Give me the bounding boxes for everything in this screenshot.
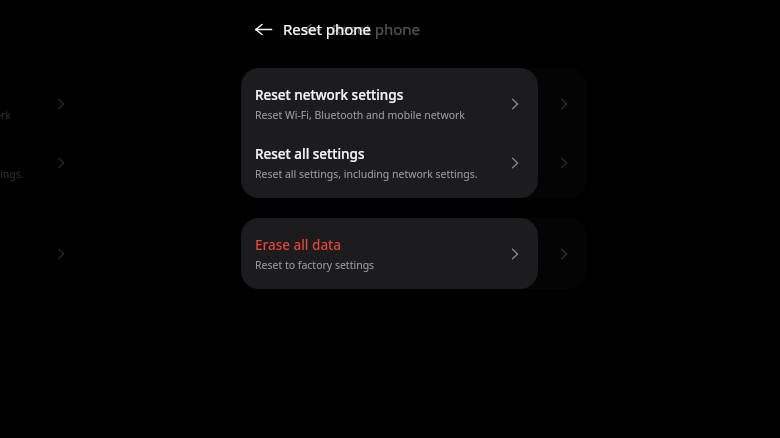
button[interactable]: Reset network settings [0, 74, 84, 133]
staticText: Reset to factory settings [255, 258, 375, 272]
button[interactable]: Reset all settings [0, 133, 84, 192]
button[interactable]: Erase all data [241, 224, 538, 283]
button[interactable]: Reset all settings [241, 133, 538, 192]
button[interactable]: Erase all data [290, 224, 587, 283]
staticText: Reset all settings, including network se… [304, 167, 527, 181]
button[interactable]: Reset network settings [290, 74, 587, 133]
button[interactable]: Back [246, 12, 280, 46]
staticText: Reset all settings, including network se… [0, 167, 24, 181]
staticText: Reset network settings [304, 86, 453, 104]
button[interactable]: Back [295, 12, 329, 46]
staticText: Erase all data [304, 236, 391, 254]
button[interactable]: Reset network settings [241, 74, 538, 133]
staticText: Reset phone [332, 19, 421, 39]
staticText: Reset Wi-Fi, Bluetooth and mobile networ… [304, 108, 551, 122]
staticText: Erase all data [255, 236, 342, 254]
staticText: Reset Wi-Fi, Bluetooth and mobile networ… [255, 108, 502, 122]
button[interactable]: Reset all settings [290, 133, 587, 192]
staticText: Reset all settings, including network se… [255, 167, 478, 181]
staticText: Reset all settings [255, 145, 365, 163]
staticText: Reset all settings [304, 145, 414, 163]
staticText: Reset Wi-Fi, Bluetooth and mobile networ… [0, 108, 48, 122]
staticText: Reset to factory settings [304, 258, 424, 272]
staticText: Reset network settings [255, 86, 404, 104]
staticText: Reset phone [283, 19, 372, 39]
